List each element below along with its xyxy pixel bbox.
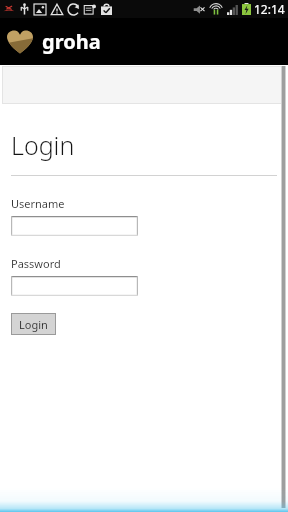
staticText: Password — [11, 256, 61, 271]
button[interactable]: groha home — [7, 28, 101, 55]
staticText: groha — [42, 28, 101, 55]
button[interactable]: Password input — [11, 276, 138, 296]
staticText: 12:14 — [254, 1, 285, 17]
other: groha logo — [7, 30, 33, 54]
button[interactable]: Search bar — [2, 66, 286, 104]
staticText: Login — [19, 317, 48, 332]
button[interactable]: Login — [11, 313, 56, 335]
staticText: Login — [11, 128, 75, 162]
button[interactable]: Username input — [11, 216, 138, 236]
staticText: Username — [11, 196, 65, 211]
